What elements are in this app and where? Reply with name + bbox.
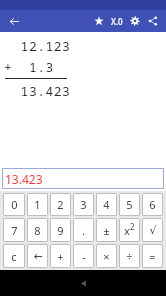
staticText: X.0 xyxy=(111,16,123,27)
staticText: 5 xyxy=(126,197,133,212)
staticText: ← xyxy=(33,250,43,263)
button[interactable]: 0 xyxy=(3,193,25,216)
staticText: 2 xyxy=(57,197,64,212)
button[interactable]: 8 xyxy=(27,218,48,242)
staticText: × xyxy=(103,249,110,264)
button[interactable]: 1 xyxy=(27,193,48,216)
staticText: 13.423 xyxy=(5,171,43,187)
staticText: 8 xyxy=(34,223,41,238)
staticText: - xyxy=(82,249,86,264)
button[interactable]: 2 xyxy=(50,193,71,216)
button[interactable]: ← xyxy=(27,244,48,268)
button[interactable]: Share xyxy=(144,12,162,30)
staticText: 9 xyxy=(57,223,64,238)
button[interactable]: 4 xyxy=(96,193,117,216)
staticText: . xyxy=(82,223,85,238)
button[interactable]: Settings xyxy=(126,12,144,30)
button[interactable]: Favorite xyxy=(90,12,108,30)
staticText: x xyxy=(124,223,130,238)
staticText: 0 xyxy=(11,197,18,212)
staticText: 2 xyxy=(130,221,135,232)
staticText: + 1.3 xyxy=(4,58,71,76)
staticText: 12.123 xyxy=(4,37,71,55)
button[interactable]: Back xyxy=(5,12,23,30)
button[interactable]: 7 xyxy=(3,218,25,242)
button[interactable]: - xyxy=(73,244,94,268)
button[interactable]: ± xyxy=(96,218,117,242)
button[interactable]: Back xyxy=(73,273,93,293)
staticText: √ xyxy=(149,224,157,237)
button[interactable]: Precision X.0 xyxy=(108,12,126,30)
staticText: 6 xyxy=(149,197,156,212)
button[interactable]: ÷ xyxy=(119,244,140,268)
staticText: 4 xyxy=(103,197,110,212)
button[interactable]: × xyxy=(96,244,117,268)
staticText: c xyxy=(11,249,17,264)
button[interactable]: √ xyxy=(142,218,163,242)
button[interactable]: 5 xyxy=(119,193,140,216)
button[interactable]: 3 xyxy=(73,193,94,216)
button[interactable]: = xyxy=(142,244,163,268)
staticText: ± xyxy=(103,223,110,238)
staticText: 7 xyxy=(11,223,18,238)
staticText: + xyxy=(57,249,64,264)
button[interactable]: 9 xyxy=(50,218,71,242)
staticText: 3 xyxy=(80,197,87,212)
button[interactable]: c xyxy=(3,244,25,268)
button[interactable]: 6 xyxy=(142,193,163,216)
staticText: ÷ xyxy=(126,249,133,264)
button[interactable]: x xyxy=(119,218,140,242)
button[interactable]: . xyxy=(73,218,94,242)
staticText: 1 xyxy=(34,197,41,212)
staticText: = xyxy=(149,249,156,264)
button[interactable]: + xyxy=(50,244,71,268)
button[interactable]: 13.423 xyxy=(2,168,164,189)
staticText: 13.423 xyxy=(4,82,71,100)
